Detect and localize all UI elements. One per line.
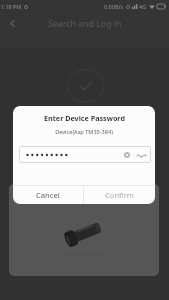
staticText: Cancel <box>36 190 60 200</box>
button[interactable]: Clear text <box>122 150 132 160</box>
staticText: Search and Log in <box>48 18 122 30</box>
staticText: Confirm <box>105 190 134 200</box>
button[interactable]: Back <box>5 16 20 31</box>
staticText: 4G <box>139 3 147 10</box>
button[interactable]: Cancel <box>13 186 83 204</box>
staticText: Device(Asp TM35-384) <box>55 128 113 136</box>
staticText: 0.00B/s <box>104 3 124 10</box>
button[interactable]: Clear text <box>19 146 151 163</box>
button[interactable]: Confirm <box>84 186 155 204</box>
staticText: Enter Device Password <box>44 113 125 123</box>
button[interactable]: Show password <box>136 150 147 161</box>
staticText: 1:18 PM <box>1 3 22 10</box>
